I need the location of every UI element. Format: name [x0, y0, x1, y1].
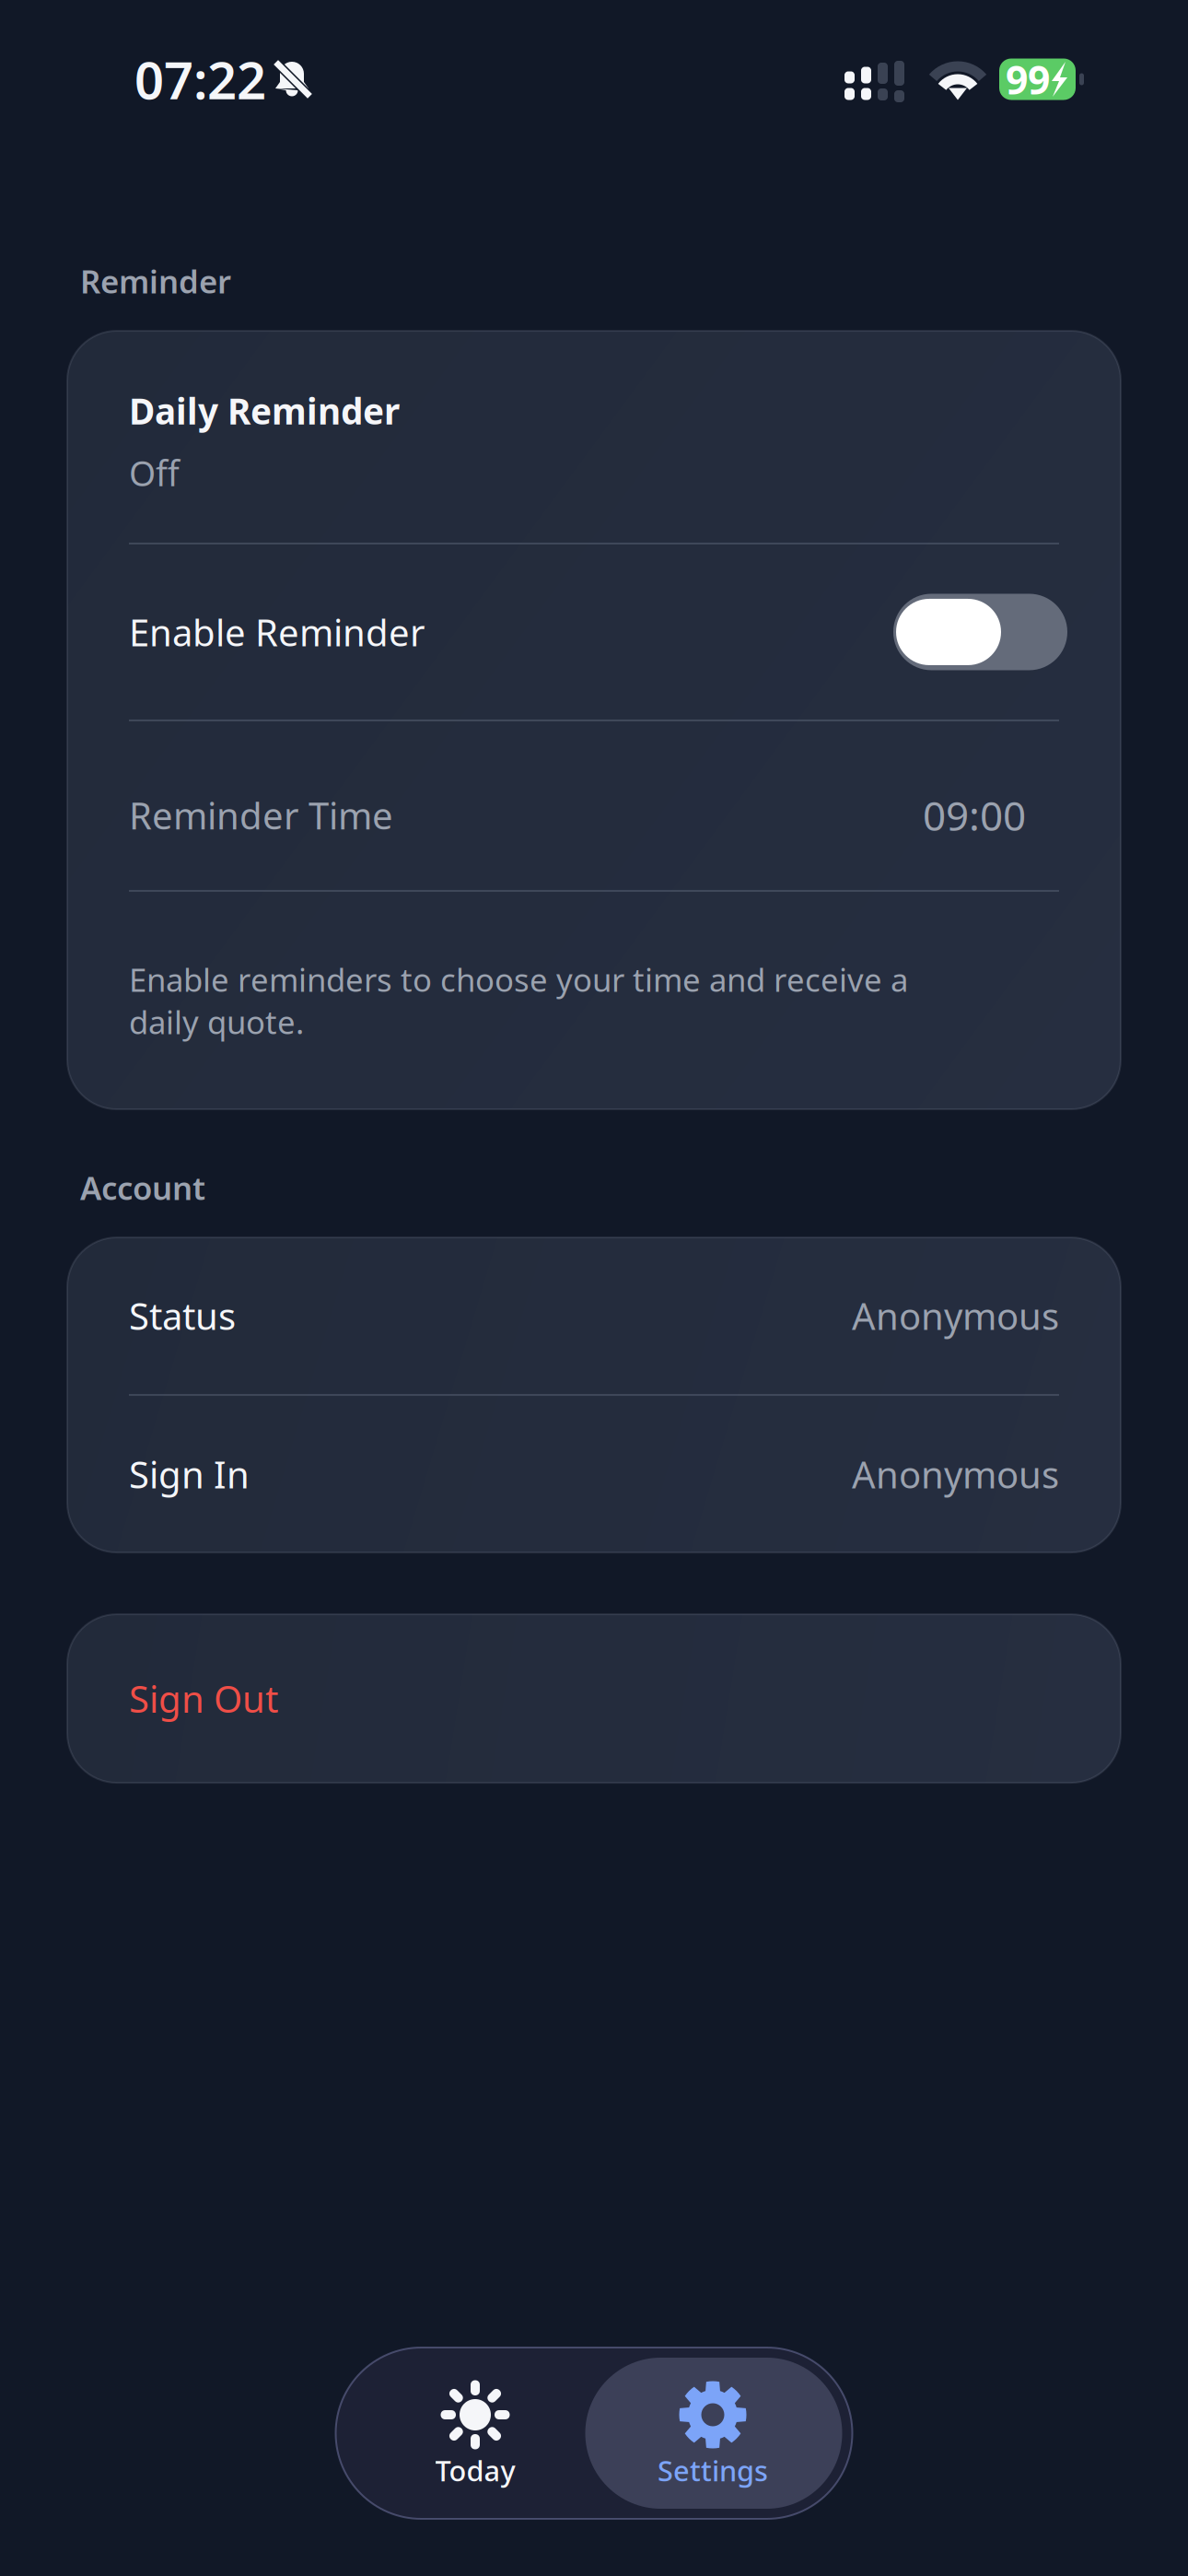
button[interactable]: Today — [356, 2358, 594, 2509]
staticText: Reminder — [80, 260, 231, 302]
staticText: Anonymous — [852, 1450, 1059, 1499]
staticText: Off — [129, 450, 180, 496]
staticText: Sign In — [129, 1450, 250, 1499]
button[interactable]: Enable Reminder — [67, 544, 1121, 720]
staticText: Anonymous — [852, 1291, 1059, 1340]
staticText: Status — [129, 1291, 236, 1340]
button[interactable]: Sign Out — [0, 1614, 1188, 1783]
staticText: Daily Reminder — [129, 387, 400, 434]
button[interactable]: Settings — [594, 2358, 832, 2509]
staticText: Account — [80, 1166, 205, 1209]
staticText: Reminder Time — [129, 791, 393, 840]
staticText: Enable Reminder — [129, 608, 425, 656]
staticText: 09:00 — [923, 788, 1026, 842]
staticText: Sign Out — [129, 1674, 278, 1723]
button[interactable]: Status — [67, 1237, 1121, 1394]
staticText: Settings — [658, 2452, 768, 2489]
button[interactable]: Reminder Time — [67, 721, 1121, 890]
staticText: Today — [435, 2452, 515, 2489]
staticText: 99 — [1006, 53, 1050, 105]
staticText: Enable reminders to choose your time and… — [129, 958, 908, 1043]
button[interactable]: Sign In — [67, 1396, 1121, 1553]
staticText: 07:22 — [134, 45, 266, 114]
